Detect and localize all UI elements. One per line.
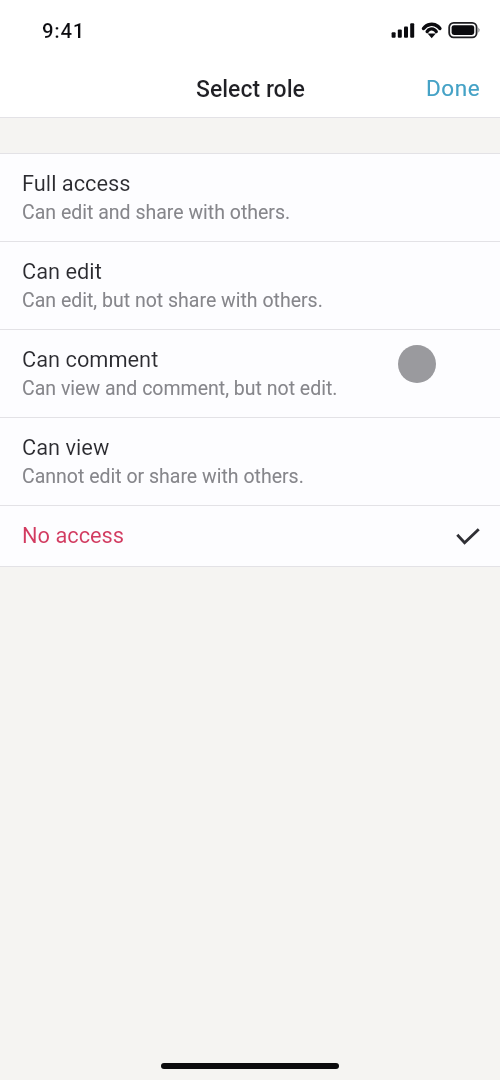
other: Avatar <box>398 345 436 383</box>
staticText: Cannot edit or share with others. <box>22 465 304 488</box>
button[interactable]: Can edit <box>0 242 500 329</box>
staticText: Done <box>426 75 481 101</box>
staticText: Can comment <box>22 347 159 373</box>
staticText: Can edit and share with others. <box>22 201 291 224</box>
staticText: Can edit <box>22 259 102 285</box>
staticText: Can edit, but not share with others. <box>22 289 323 312</box>
button[interactable]: Can view <box>0 418 500 505</box>
staticText: Can view <box>22 435 110 461</box>
staticText: 9:41 <box>42 19 86 43</box>
staticText: Can view and comment, but not edit. <box>22 377 338 400</box>
staticText: Full access <box>22 171 131 197</box>
button[interactable]: No access <box>0 506 500 566</box>
staticText: Select role <box>196 76 305 103</box>
button[interactable]: Done <box>402 64 500 114</box>
staticText: No access <box>22 523 125 549</box>
other: Selected <box>457 529 479 544</box>
button[interactable]: Full access <box>0 154 500 241</box>
button[interactable]: Can comment <box>0 330 500 417</box>
